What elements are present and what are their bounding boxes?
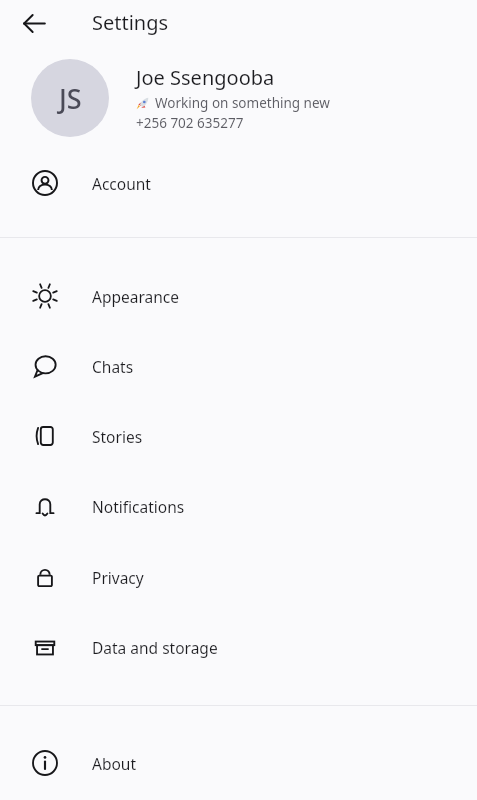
staticText: Joe Ssengooba — [136, 64, 275, 91]
button[interactable]: Account — [0, 148, 477, 218]
button[interactable]: About — [0, 728, 477, 798]
button[interactable]: Notifications — [0, 471, 477, 542]
staticText: Notifications — [92, 496, 185, 517]
staticText: +256 702 635277 — [136, 114, 244, 132]
button[interactable]: Stories — [0, 401, 477, 471]
staticText: Privacy — [92, 567, 144, 588]
button[interactable]: Privacy — [0, 542, 477, 612]
staticText: Data and storage — [92, 637, 218, 658]
button[interactable]: Back — [14, 3, 54, 43]
button[interactable]: Chats — [0, 331, 477, 401]
staticText: Working on something new — [155, 94, 330, 112]
staticText: Account — [92, 173, 151, 194]
button[interactable]: Data and storage — [0, 612, 477, 683]
button[interactable]: JS — [0, 47, 477, 148]
staticText: Stories — [92, 426, 143, 447]
staticText: Settings — [92, 9, 169, 36]
staticText: Chats — [92, 356, 134, 377]
staticText: About — [92, 753, 136, 774]
button[interactable]: Appearance — [0, 261, 477, 331]
staticText: JS — [59, 80, 82, 117]
staticText: Appearance — [92, 286, 179, 307]
